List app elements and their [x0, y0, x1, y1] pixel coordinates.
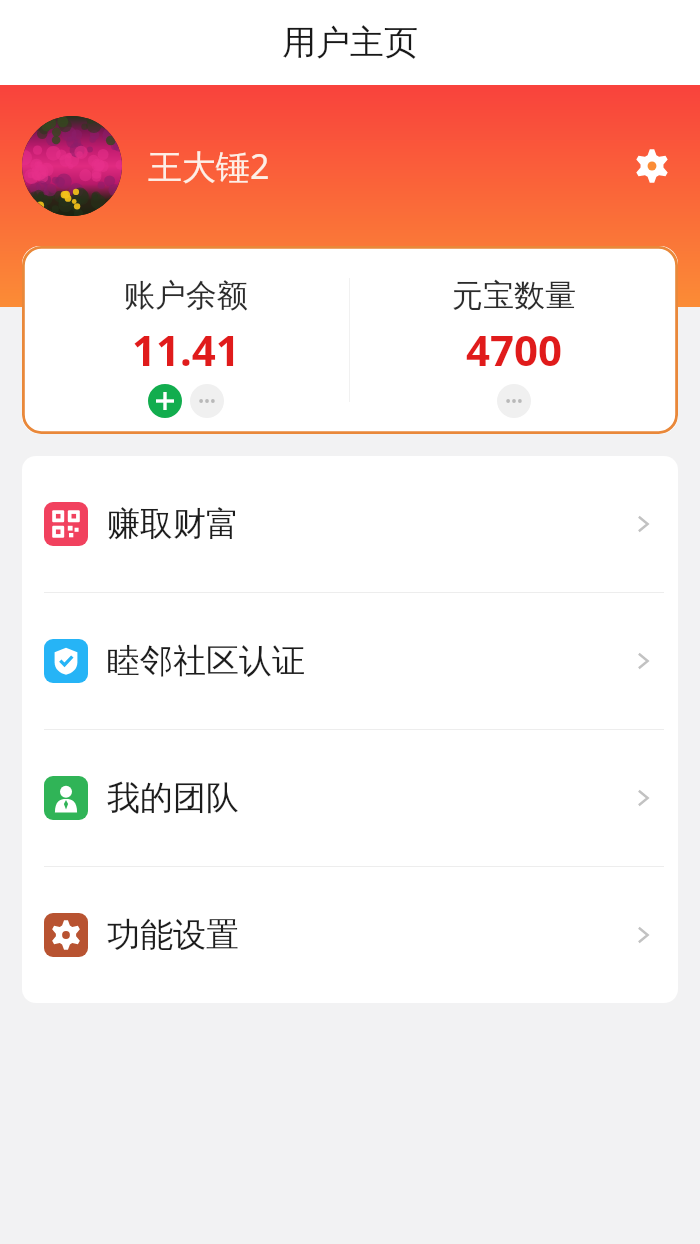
staticText: 睦邻社区认证	[107, 640, 305, 682]
staticText: 我的团队	[107, 777, 239, 819]
button[interactable]: 功能设置	[22, 867, 678, 1003]
staticText: 元宝数量	[452, 276, 576, 315]
staticText: 功能设置	[107, 914, 239, 956]
button[interactable]: 赚取财富	[22, 456, 678, 593]
staticText: 11.41	[132, 321, 240, 378]
button[interactable]: More options	[190, 384, 224, 418]
button[interactable]: Settings	[628, 142, 676, 190]
button[interactable]: Add funds	[148, 384, 182, 418]
staticText: 4700	[466, 321, 563, 378]
staticText: 账户余额	[124, 276, 248, 315]
staticText: 用户主页	[282, 21, 418, 64]
staticText: 王大锤2	[148, 143, 270, 189]
button[interactable]: More options	[497, 384, 531, 418]
button[interactable]: 睦邻社区认证	[22, 593, 678, 730]
staticText: 赚取财富	[107, 503, 239, 545]
button[interactable]: 我的团队	[22, 730, 678, 867]
